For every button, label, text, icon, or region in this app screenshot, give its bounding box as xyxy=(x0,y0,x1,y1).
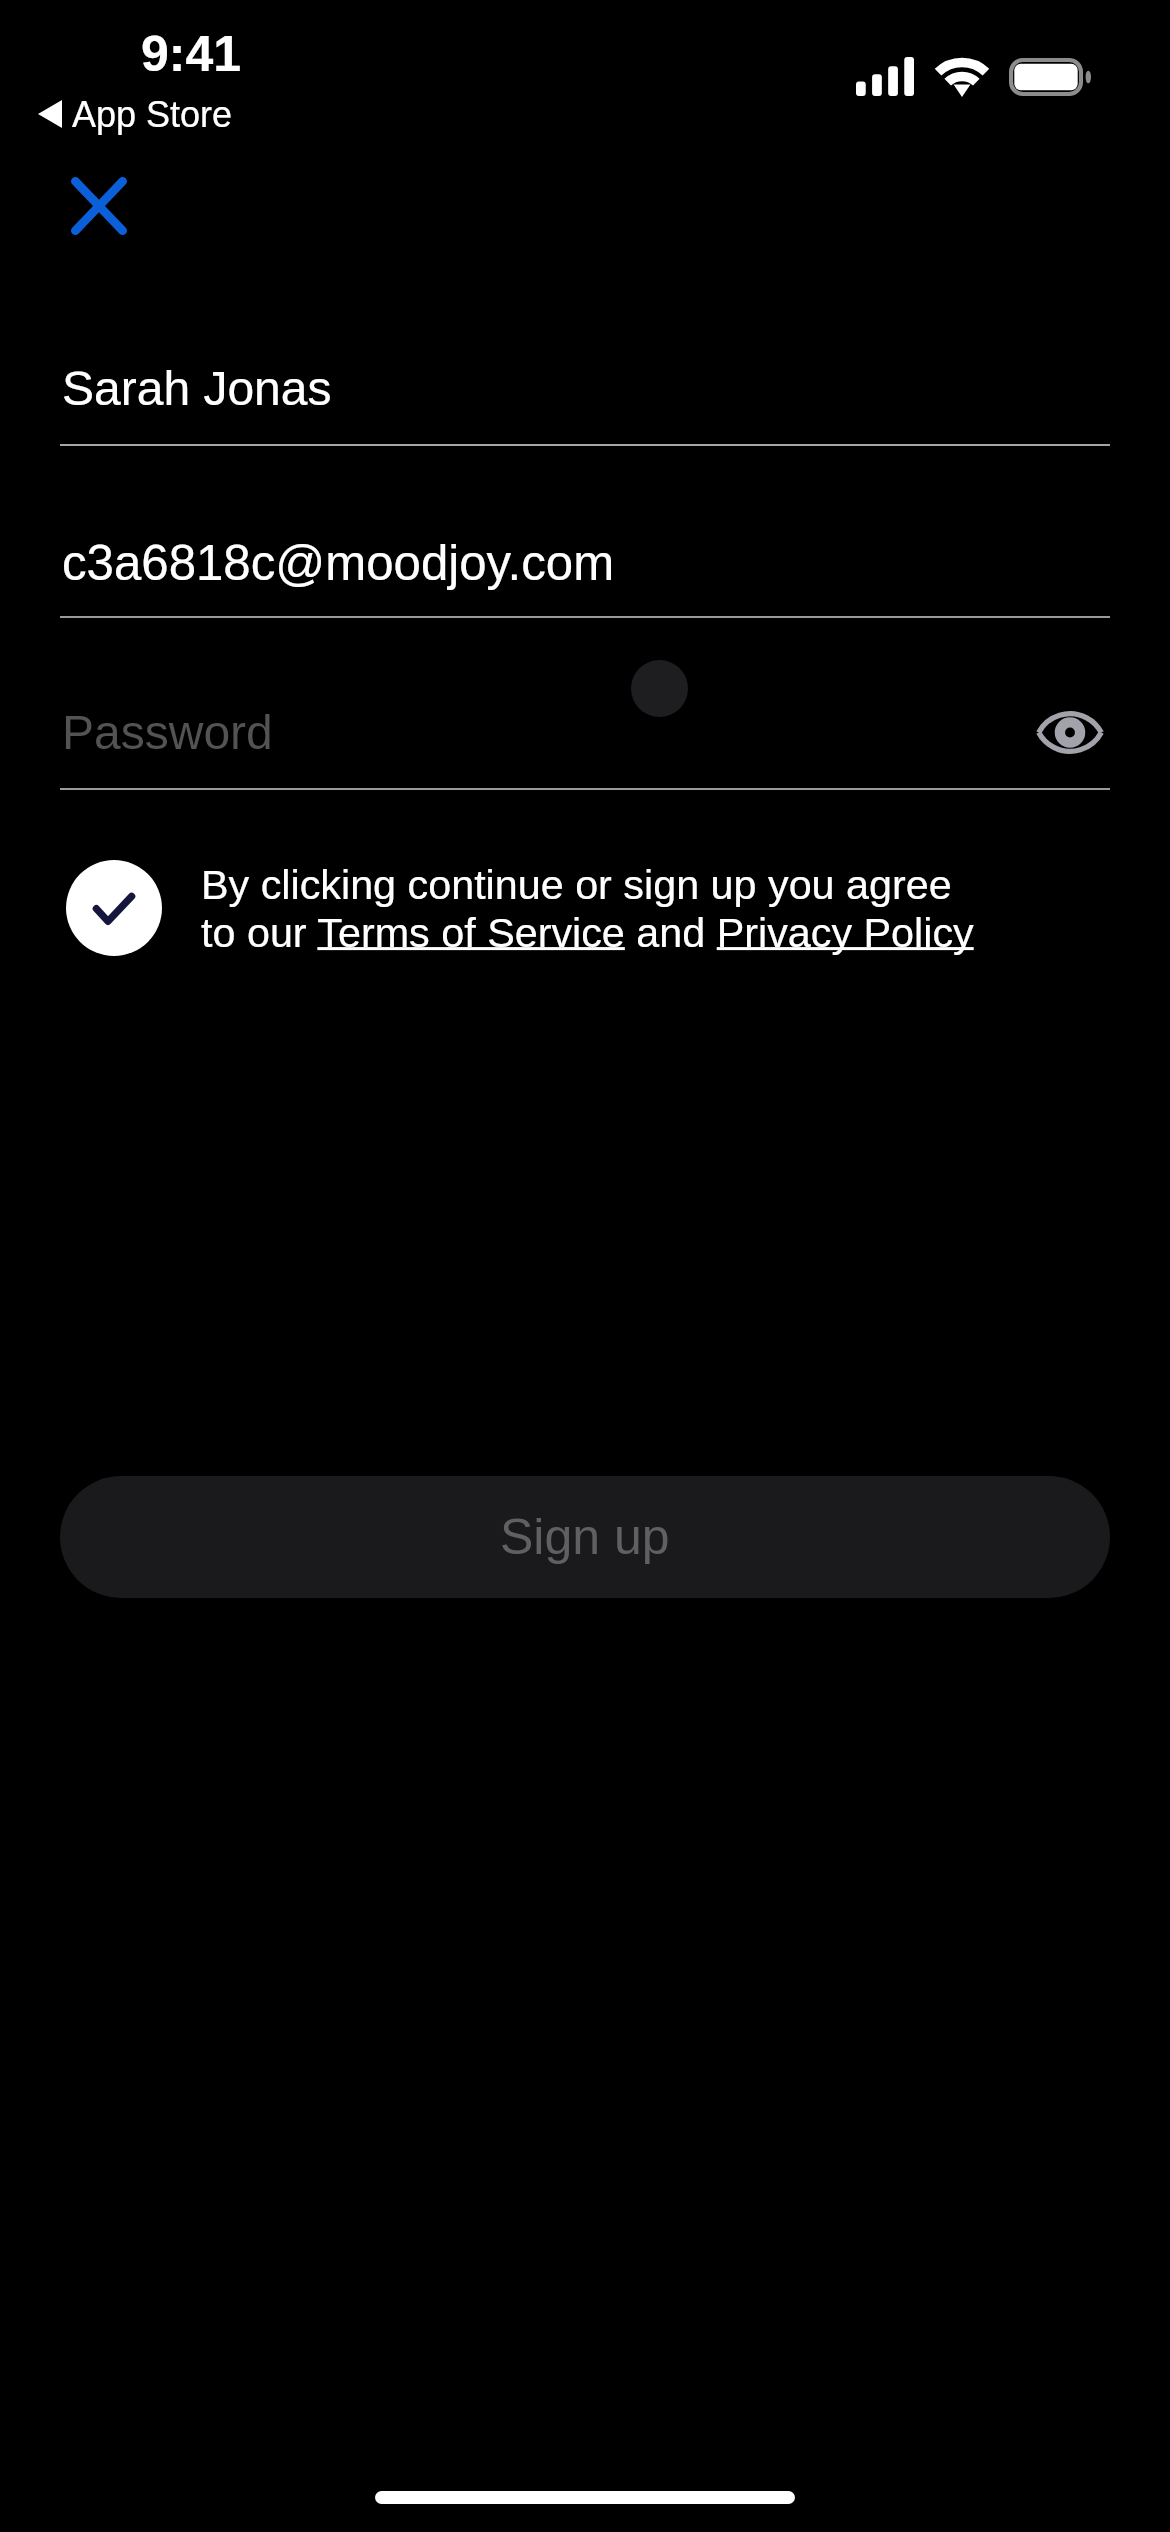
staticText: Sarah Jonas xyxy=(62,362,332,416)
button[interactable]: Agree to terms xyxy=(66,860,162,956)
button[interactable]: Show password xyxy=(1024,700,1116,764)
button[interactable]: Close xyxy=(58,164,140,247)
staticText: c3a6818c@moodjoy.com xyxy=(62,535,615,590)
staticText: By clicking continue or sign up you agre… xyxy=(201,862,974,956)
staticText: Sign up xyxy=(500,1509,670,1565)
staticText: 9:41 xyxy=(141,26,242,82)
button[interactable]: App Store xyxy=(38,94,233,134)
staticText: Password xyxy=(62,706,273,760)
staticText: App Store xyxy=(72,94,233,134)
button[interactable]: Sign up xyxy=(60,1476,1110,1598)
